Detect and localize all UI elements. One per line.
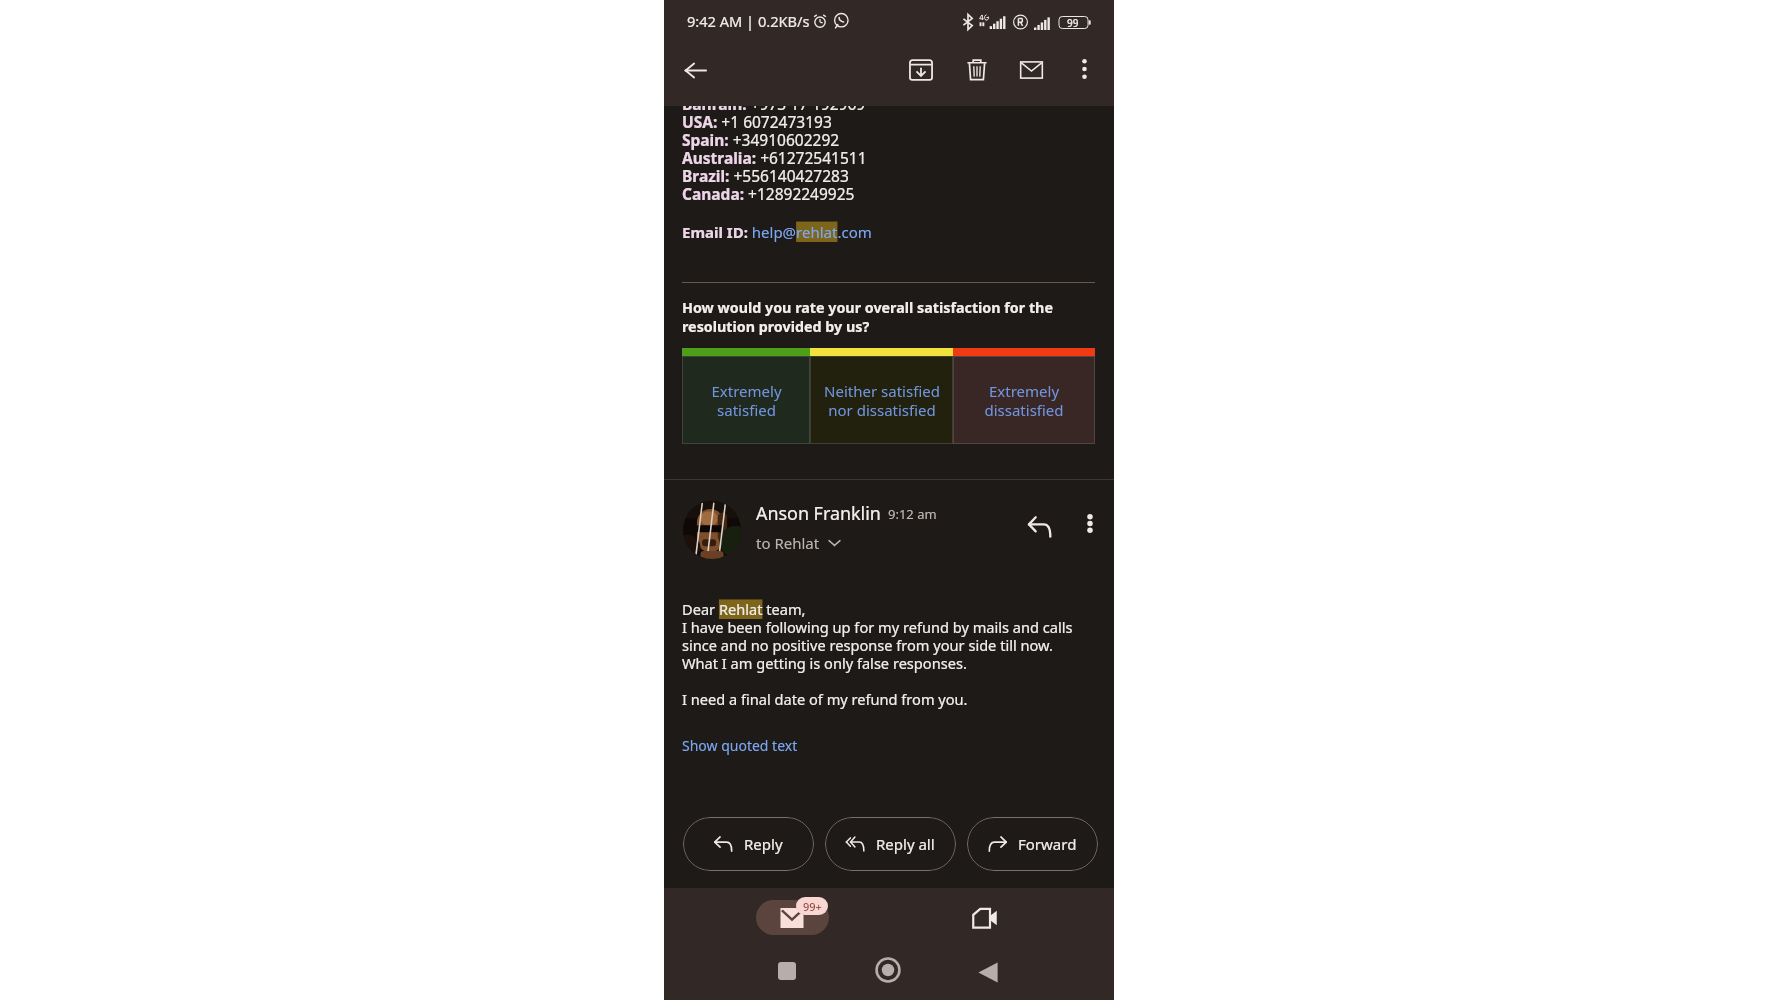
button[interactable]: Meet	[960, 896, 1008, 944]
staticText: 99	[1067, 16, 1079, 30]
staticText: Extremely satisfied	[711, 381, 782, 420]
button[interactable]: More options	[1073, 506, 1107, 540]
button[interactable]: to Rehlat	[756, 533, 841, 553]
button[interactable]: Back	[968, 952, 1008, 992]
button[interactable]: Reply all	[825, 817, 956, 871]
button[interactable]: Sender avatar	[683, 501, 741, 559]
button[interactable]: Home	[866, 948, 910, 992]
staticText: 99+	[803, 899, 822, 914]
button[interactable]: Email ID: help@rehlat.com	[682, 222, 872, 242]
staticText: Neither satisfied nor dissatisfied	[824, 381, 940, 420]
button[interactable]: Reply	[1019, 506, 1061, 548]
button[interactable]: Extremely dissatisfied	[953, 348, 1095, 444]
button[interactable]: More options	[1064, 49, 1104, 89]
staticText: Dear Rehlat team, I have been following …	[682, 599, 1073, 710]
staticText: Reply all	[876, 834, 935, 854]
button[interactable]: Show quoted text	[682, 736, 798, 755]
staticText: Extremely dissatisfied	[984, 381, 1064, 420]
button[interactable]: Forward	[967, 817, 1098, 871]
staticText: How would you rate your overall satisfac…	[682, 298, 1053, 336]
button[interactable]: Delete	[954, 47, 1000, 93]
staticText: to Rehlat	[756, 533, 820, 553]
staticText: 9:12 am	[888, 505, 937, 523]
button[interactable]: Extremely satisfied	[682, 348, 810, 444]
staticText: Forward	[1018, 834, 1077, 854]
staticText: 9:42 AM | 0.2KB/s	[687, 11, 810, 31]
button[interactable]: Recents	[767, 951, 807, 991]
staticText: Anson Franklin	[756, 501, 881, 525]
button[interactable]: Reply	[683, 817, 814, 871]
button[interactable]: Neither satisfied nor dissatisfied	[810, 348, 953, 444]
staticText: Reply	[744, 834, 783, 854]
button[interactable]: Back	[672, 47, 718, 93]
button[interactable]: Archive	[898, 47, 944, 93]
button[interactable]: Mark as unread	[1008, 47, 1054, 93]
button[interactable]: Mail	[756, 900, 829, 935]
staticText: Bahrain: +973 17 192969 USA: +1 60724731…	[682, 93, 867, 205]
